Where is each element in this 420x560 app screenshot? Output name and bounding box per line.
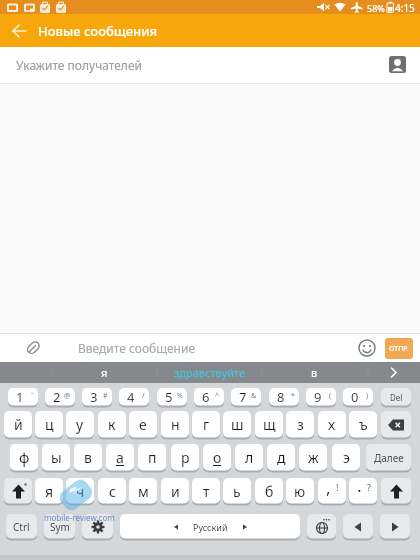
staticText: mobile-review.com [44,512,115,523]
button[interactable]: в [262,362,367,383]
button[interactable]: Укажите получателей [0,47,420,83]
button[interactable]: р [171,444,199,471]
button[interactable] [307,514,336,539]
button[interactable]: ОТПР. [385,338,413,359]
staticText: Введите сообщение [78,340,196,356]
staticText: ОТПР. [389,344,409,354]
button[interactable]: у [66,411,94,438]
button[interactable]: Ctrl [6,514,37,539]
button[interactable]: Del [381,388,411,406]
staticText: Новые сообщения [38,22,158,40]
button[interactable]: 2 [45,388,75,406]
button[interactable]: м [129,478,157,504]
button[interactable]: 8 [269,388,299,406]
button[interactable]: в [74,444,102,471]
button[interactable]: ь [223,478,251,504]
button[interactable]: ч [66,478,94,504]
button[interactable]: ф [10,444,38,471]
staticText: д [277,448,286,467]
staticText: / [142,391,145,401]
button[interactable]: , [318,478,346,504]
button[interactable]: Далее [366,444,411,471]
button[interactable] [82,514,113,539]
button[interactable]: ж [299,444,327,471]
button[interactable]: 1 [8,388,38,406]
staticText: ч [76,482,85,501]
button[interactable]: п [138,444,166,471]
button[interactable]: г [192,411,220,438]
button[interactable] [8,19,32,43]
staticText: и [171,482,180,501]
button[interactable]: я [35,478,63,504]
button[interactable]: д [267,444,295,471]
staticText: 3 [90,388,98,406]
button[interactable]: н [161,411,189,438]
staticText: з [297,415,304,434]
staticText: в [311,365,318,380]
staticText: 7 [239,388,247,406]
button[interactable]: ц [35,411,63,438]
button[interactable]: э [332,444,360,471]
staticText: е [139,415,147,434]
button[interactable]: 6 [194,388,224,406]
staticText: ц [45,415,54,434]
button[interactable]: е [129,411,157,438]
staticText: э [343,448,350,467]
staticText: % [177,391,183,401]
button[interactable]: ъ [349,411,377,438]
button[interactable]: к [98,411,126,438]
button[interactable] [343,514,373,539]
button[interactable]: Sym [44,514,75,539]
button[interactable] [381,478,411,504]
button[interactable]: 9 [306,388,336,406]
staticText: я [101,365,108,380]
staticText: 5 [165,388,173,406]
button[interactable]: 5 [157,388,187,406]
button[interactable]: ю [286,478,314,504]
button[interactable]: х [318,411,346,438]
button[interactable]: щ [255,411,283,438]
staticText: ы [51,448,62,467]
button[interactable]: я [52,362,157,383]
button[interactable]: . [349,478,377,504]
button[interactable] [380,514,410,539]
button[interactable]: 7 [231,388,261,406]
button[interactable]: 3 [82,388,112,406]
staticText: ш [231,415,244,434]
staticText: Del [390,392,403,403]
button[interactable] [358,339,376,357]
button[interactable] [389,56,407,74]
button[interactable]: 0 [343,388,373,406]
staticText: 0 [351,388,359,406]
staticText: ж [308,448,319,467]
button[interactable]: з [286,411,314,438]
staticText: 4 [127,388,135,406]
staticText: м [138,482,149,501]
staticText: й [14,415,23,434]
button[interactable]: б [255,478,283,504]
button[interactable]: здравствуйте [157,362,262,383]
staticText: , [326,476,331,499]
button[interactable]: а [106,444,134,471]
button[interactable] [23,338,43,358]
staticText: 6 [202,388,210,406]
staticText: * [291,391,295,401]
staticText: щ [263,415,276,434]
staticText: Ctrl [13,520,30,534]
button[interactable]: Русский [120,514,300,539]
button[interactable] [4,478,32,504]
button[interactable]: 4 [119,388,149,406]
button[interactable]: л [235,444,263,471]
button[interactable]: ы [42,444,70,471]
staticText: о [213,448,222,467]
button[interactable]: о [203,444,231,471]
button[interactable]: й [4,411,32,438]
button[interactable] [381,411,411,438]
button[interactable]: т [192,478,220,504]
button[interactable]: ш [223,411,251,438]
staticText: . [357,474,362,497]
button[interactable]: с [98,478,126,504]
staticText: ф [19,448,30,467]
staticText: 9 [314,388,322,406]
button[interactable]: и [161,478,189,504]
